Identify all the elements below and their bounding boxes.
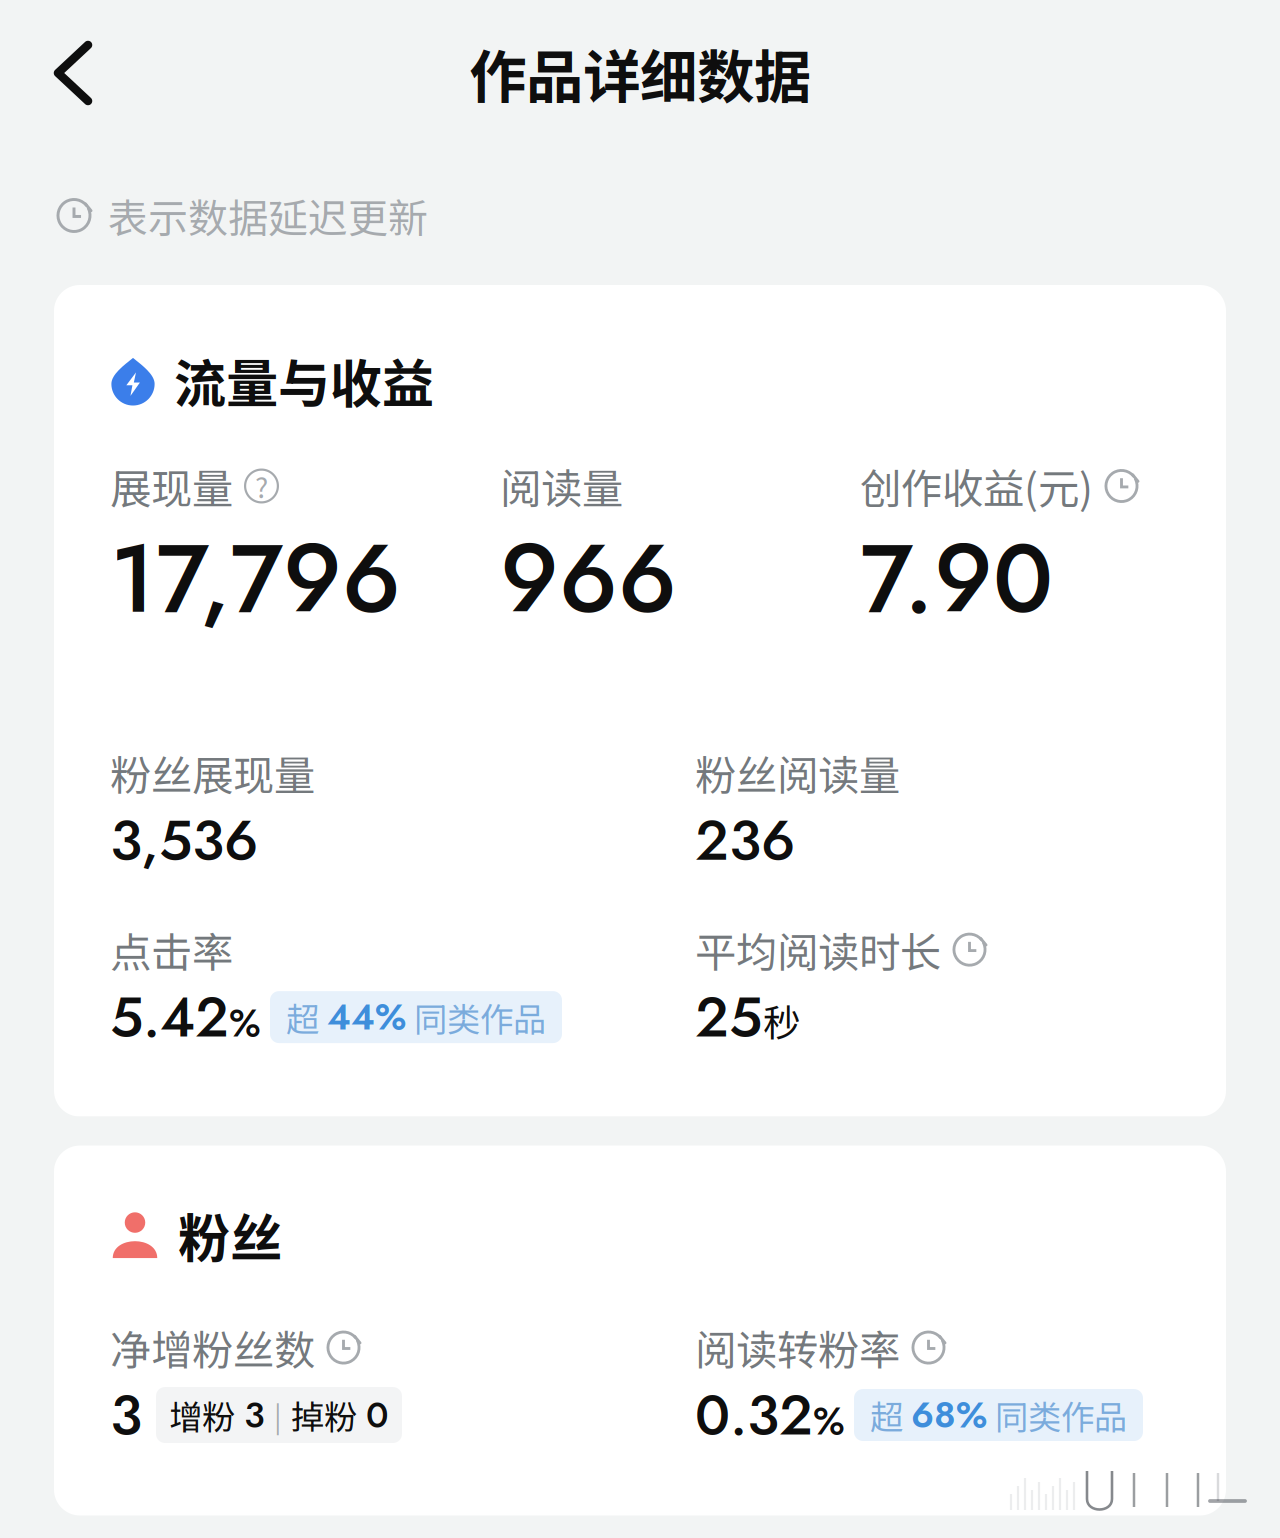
staticText: 5.42 xyxy=(110,977,229,1057)
staticText: 点击率 xyxy=(110,920,233,980)
staticText: 7.90 xyxy=(860,509,1053,648)
staticText: 阅读量 xyxy=(500,456,623,516)
staticText: 作品详细数据 xyxy=(469,31,811,114)
staticText: 增粉 xyxy=(169,1391,235,1439)
staticText: 3 xyxy=(110,1375,142,1455)
button[interactable]: Back xyxy=(0,23,123,123)
staticText: 17,796 xyxy=(110,509,401,648)
staticText: 0 xyxy=(366,1389,389,1441)
staticText: 掉粉 xyxy=(291,1391,357,1439)
staticText: 秒 xyxy=(763,993,800,1047)
staticText: | xyxy=(274,1395,282,1435)
staticText: ? xyxy=(255,466,268,506)
staticText: 粉丝展现量 xyxy=(110,743,315,803)
staticText: 68% xyxy=(911,1389,987,1441)
staticText: 展现量 xyxy=(110,456,233,516)
staticText: 超 xyxy=(286,993,319,1041)
staticText: % xyxy=(813,1393,845,1449)
staticText: % xyxy=(229,995,261,1051)
staticText: 966 xyxy=(500,509,677,648)
staticText: 25 xyxy=(695,977,762,1057)
staticText: 粉丝阅读量 xyxy=(695,743,900,803)
staticText: 净增粉丝数 xyxy=(110,1318,315,1377)
staticText: 表示数据延迟更新 xyxy=(108,186,428,244)
staticText: 0.32 xyxy=(695,1375,813,1455)
staticText: 阅读转粉率 xyxy=(695,1318,900,1377)
staticText: 3 xyxy=(244,1389,265,1441)
staticText: 3,536 xyxy=(110,800,258,881)
staticText: 超 xyxy=(870,1391,903,1439)
staticText: 粉丝 xyxy=(178,1197,282,1272)
staticText: 236 xyxy=(695,800,795,881)
staticText: 流量与收益 xyxy=(174,342,434,418)
staticText: 平均阅读时长 xyxy=(695,920,941,980)
staticText: 44% xyxy=(327,991,406,1043)
staticText: 同类作品 xyxy=(995,1391,1127,1439)
staticText: 同类作品 xyxy=(414,993,546,1041)
staticText: 创作收益(元) xyxy=(860,456,1093,516)
